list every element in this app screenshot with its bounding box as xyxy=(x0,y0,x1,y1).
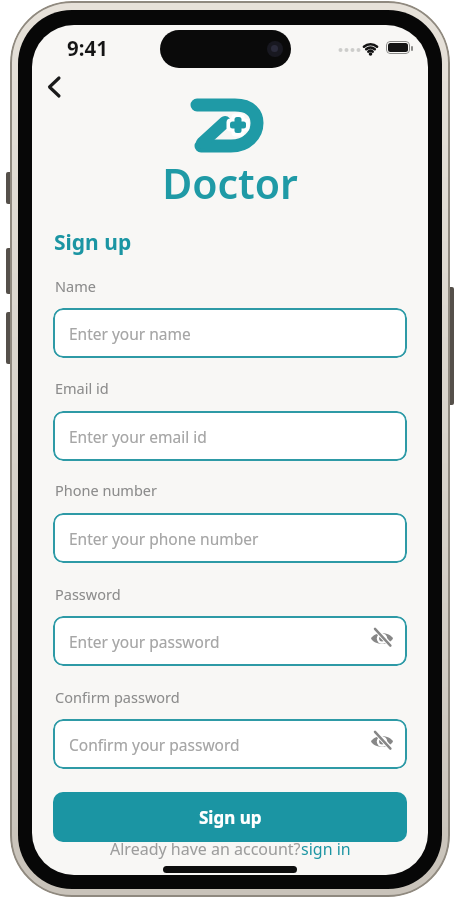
staticText: Confirm your password xyxy=(69,734,240,755)
button[interactable]: Enter your name xyxy=(53,308,407,358)
staticText: Enter your phone number xyxy=(69,528,259,549)
button[interactable] xyxy=(40,70,70,102)
staticText: Confirm password xyxy=(55,687,180,707)
staticText: Already have an account? xyxy=(110,838,301,860)
staticText: Phone number xyxy=(55,480,157,500)
staticText: Password xyxy=(55,584,121,604)
staticText: 9:41 xyxy=(67,34,108,62)
staticText: Enter your email id xyxy=(69,426,207,447)
staticText: Sign up xyxy=(54,228,132,257)
staticText: Doctor xyxy=(32,155,428,211)
staticText: Email id xyxy=(55,378,109,398)
button[interactable]: Enter your password xyxy=(53,616,407,666)
button[interactable]: Confirm your password xyxy=(53,719,407,769)
button[interactable]: Enter your phone number xyxy=(53,513,407,563)
staticText: Name xyxy=(55,276,96,296)
button[interactable] xyxy=(370,626,394,650)
button[interactable]: sign in xyxy=(301,838,351,860)
button[interactable]: Enter your email id xyxy=(53,411,407,461)
button[interactable]: Sign up xyxy=(53,792,407,842)
staticText: Enter your password xyxy=(69,631,220,652)
button[interactable] xyxy=(370,729,394,753)
staticText: Sign up xyxy=(199,806,262,829)
staticText: Enter your name xyxy=(69,323,191,344)
